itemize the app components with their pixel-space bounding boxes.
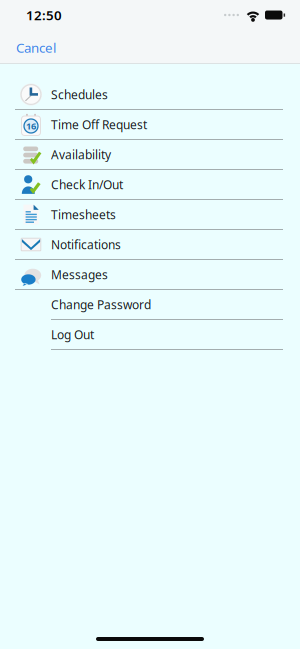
staticText: Availability: [51, 146, 111, 162]
button[interactable]: Change Password: [0, 290, 300, 320]
staticText: Messages: [51, 266, 108, 282]
button[interactable]: Log Out: [0, 320, 300, 350]
staticText: Schedules: [51, 86, 108, 102]
staticText: Notifications: [51, 236, 121, 252]
staticText: 12:50: [26, 6, 62, 24]
staticText: Change Password: [51, 296, 151, 312]
staticText: 16: [26, 120, 36, 132]
staticText: Cancel: [16, 39, 56, 56]
button[interactable]: Cancel: [0, 30, 70, 63]
button[interactable]: Messages: [0, 260, 300, 290]
button[interactable]: Availability: [0, 140, 300, 170]
button[interactable]: Notifications: [0, 230, 300, 260]
button[interactable]: Check In/Out: [0, 170, 300, 200]
button[interactable]: 16: [0, 110, 300, 140]
staticText: Check In/Out: [51, 176, 123, 192]
staticText: Time Off Request: [51, 116, 147, 132]
staticText: Log Out: [51, 326, 94, 342]
button[interactable]: Timesheets: [0, 200, 300, 230]
staticText: Timesheets: [51, 206, 116, 222]
button[interactable]: Schedules: [0, 80, 300, 110]
